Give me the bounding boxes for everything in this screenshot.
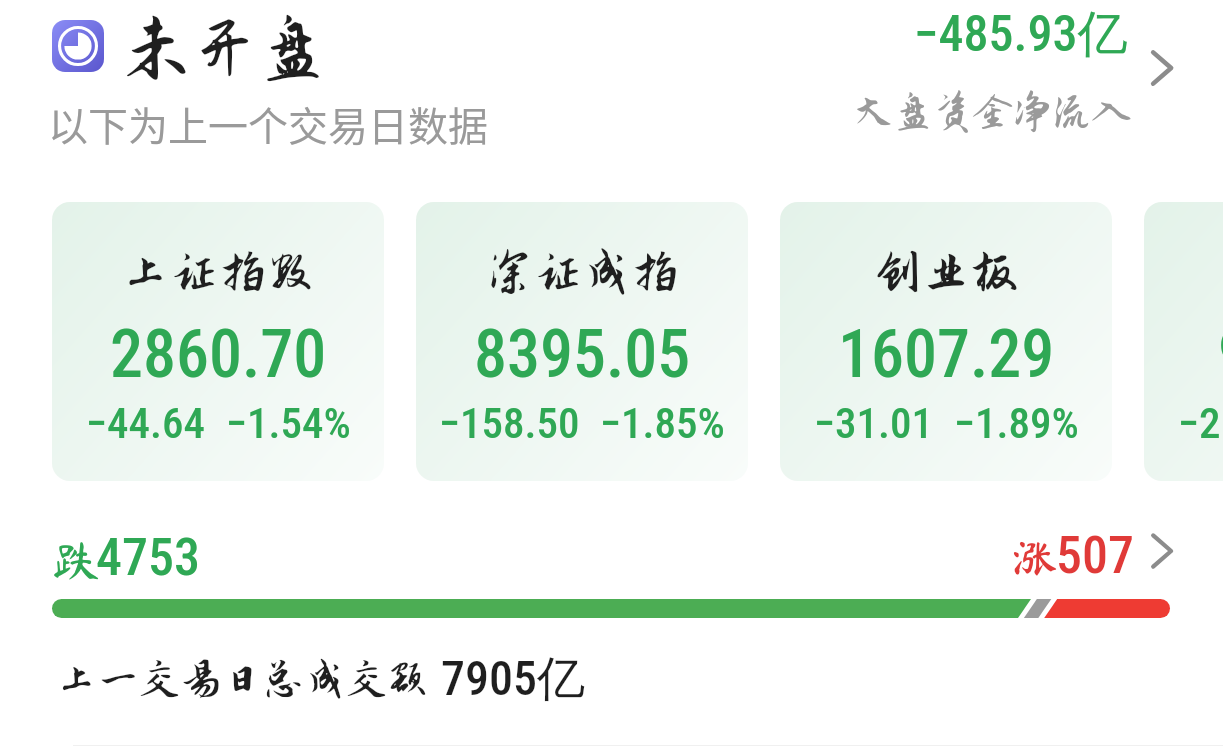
button[interactable]: 科创50	[1144, 202, 1223, 481]
staticText: 大盘资金净流入	[854, 90, 1132, 134]
button[interactable]: 上证指数	[52, 202, 384, 481]
staticText: −1.89%	[954, 398, 1079, 448]
staticText: −485.93亿	[914, 3, 1128, 66]
staticText: 涨	[1012, 535, 1058, 581]
staticText: 2860.70	[110, 316, 327, 393]
staticText: −1.54%	[226, 398, 351, 448]
button[interactable]: 未开盘	[52, 6, 452, 86]
staticText: 未开盘	[122, 11, 328, 87]
staticText: 深证成指	[485, 245, 680, 299]
button[interactable]: 跌	[52, 521, 1172, 589]
staticText: 8395.05	[474, 316, 691, 393]
staticText: 4753	[96, 527, 200, 588]
other: View rise and fall details	[1138, 528, 1184, 574]
staticText: 上一交易日总成交额	[56, 657, 429, 703]
staticText: 905.41	[1218, 316, 1223, 393]
staticText: 以下为上一个交易日数据	[48, 95, 488, 153]
staticText: −31.01	[814, 398, 934, 448]
staticText: 创业板	[873, 245, 1019, 299]
staticText: 上证指数	[121, 245, 316, 299]
staticText: −44.64	[86, 398, 206, 448]
other: View fund flow details	[1138, 45, 1184, 91]
button[interactable]: 创业板	[780, 202, 1112, 481]
staticText: 7905亿	[441, 649, 585, 709]
staticText: 1607.29	[838, 316, 1055, 393]
staticText: 跌	[53, 537, 99, 583]
staticText: −1.85%	[600, 398, 725, 448]
staticText: 507	[1056, 525, 1134, 586]
staticText: −158.50	[439, 398, 580, 448]
button[interactable]: 深证成指	[416, 202, 748, 481]
staticText: −21.18	[1178, 398, 1223, 448]
button[interactable]: −485.93亿	[820, 0, 1190, 150]
